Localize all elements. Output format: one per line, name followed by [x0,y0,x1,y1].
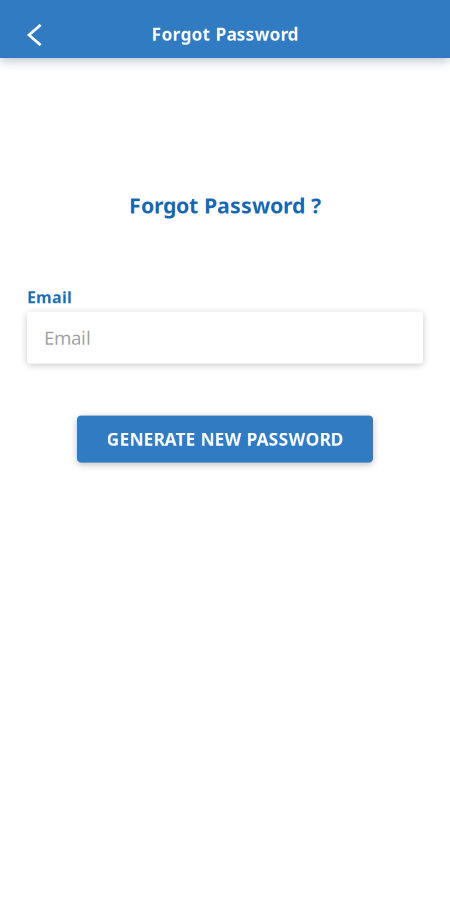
staticText: Email [27,286,72,307]
staticText: Email [44,325,91,350]
staticText: Forgot Password ? [129,191,321,219]
staticText: GENERATE NEW PASSWORD [106,428,343,451]
button[interactable]: GENERATE NEW PASSWORD [77,416,373,463]
staticText: Forgot Password [151,22,298,45]
button[interactable]: Email [27,312,423,364]
button[interactable]: Back [0,0,70,58]
